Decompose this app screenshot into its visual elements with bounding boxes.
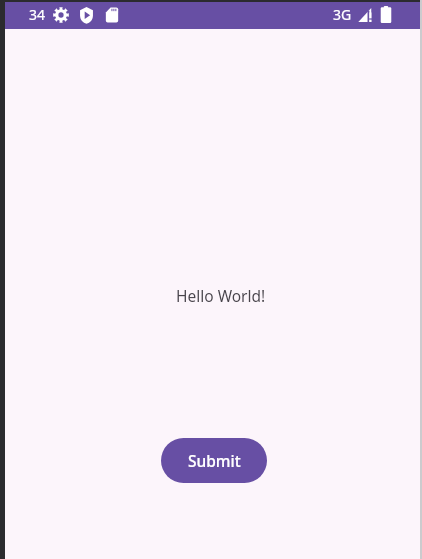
staticText: 3G	[333, 5, 352, 24]
staticText: 34	[29, 5, 46, 24]
button[interactable]: Submit	[161, 438, 267, 483]
button[interactable]: Settings	[53, 7, 69, 23]
staticText: Hello World!	[176, 285, 266, 306]
other: Mobile signal, no service	[358, 6, 375, 23]
button[interactable]: Play Protect	[79, 6, 94, 24]
staticText: Submit	[188, 450, 241, 471]
button[interactable]: SD card	[105, 7, 119, 23]
other: Battery full	[380, 6, 392, 23]
